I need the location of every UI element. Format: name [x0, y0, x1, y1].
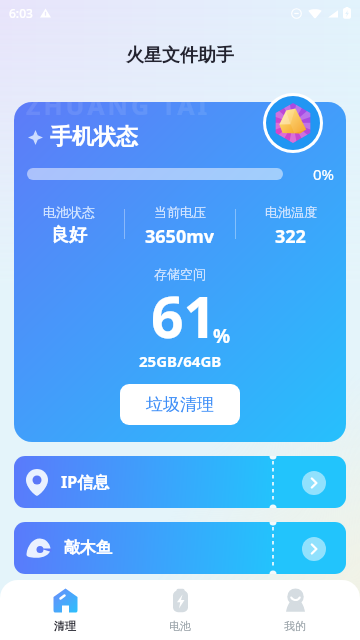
- button[interactable]: 我的: [245, 580, 345, 640]
- staticText: 电池状态: [43, 204, 95, 220]
- staticText: 电池温度: [265, 204, 317, 220]
- staticText: %: [213, 323, 231, 349]
- button[interactable]: IP信息: [14, 456, 346, 508]
- button[interactable]: 敲木鱼: [14, 522, 346, 574]
- staticText: 火星文件助手: [126, 44, 234, 67]
- staticText: 我的: [284, 619, 306, 633]
- staticText: 25GB/64GB: [139, 351, 222, 371]
- staticText: 6:03: [9, 5, 33, 21]
- staticText: 清理: [54, 619, 76, 633]
- staticText: 垃圾清理: [146, 394, 214, 415]
- staticText: 存储空间: [154, 266, 206, 282]
- staticText: 敲木鱼: [64, 538, 112, 558]
- staticText: 0%: [313, 164, 335, 184]
- button[interactable]: 电池: [130, 580, 230, 640]
- staticText: 322: [275, 224, 306, 249]
- staticText: 手机状态: [50, 123, 138, 151]
- button[interactable]: 清理: [15, 580, 115, 640]
- staticText: 3650mv: [145, 224, 215, 249]
- button[interactable]: 垃圾清理: [120, 384, 240, 425]
- button[interactable]: 状态徽章: [266, 96, 320, 150]
- staticText: 电池: [169, 619, 191, 633]
- staticText: ZHUANG TAI: [26, 102, 211, 122]
- staticText: IP信息: [61, 471, 110, 493]
- staticText: 良好: [51, 224, 87, 247]
- staticText: 当前电压: [154, 204, 206, 220]
- staticText: 61: [151, 277, 217, 355]
